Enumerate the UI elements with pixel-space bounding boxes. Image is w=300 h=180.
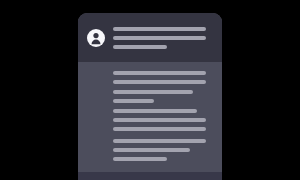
button[interactable] bbox=[78, 13, 222, 62]
button[interactable]: Profile bbox=[87, 29, 105, 47]
